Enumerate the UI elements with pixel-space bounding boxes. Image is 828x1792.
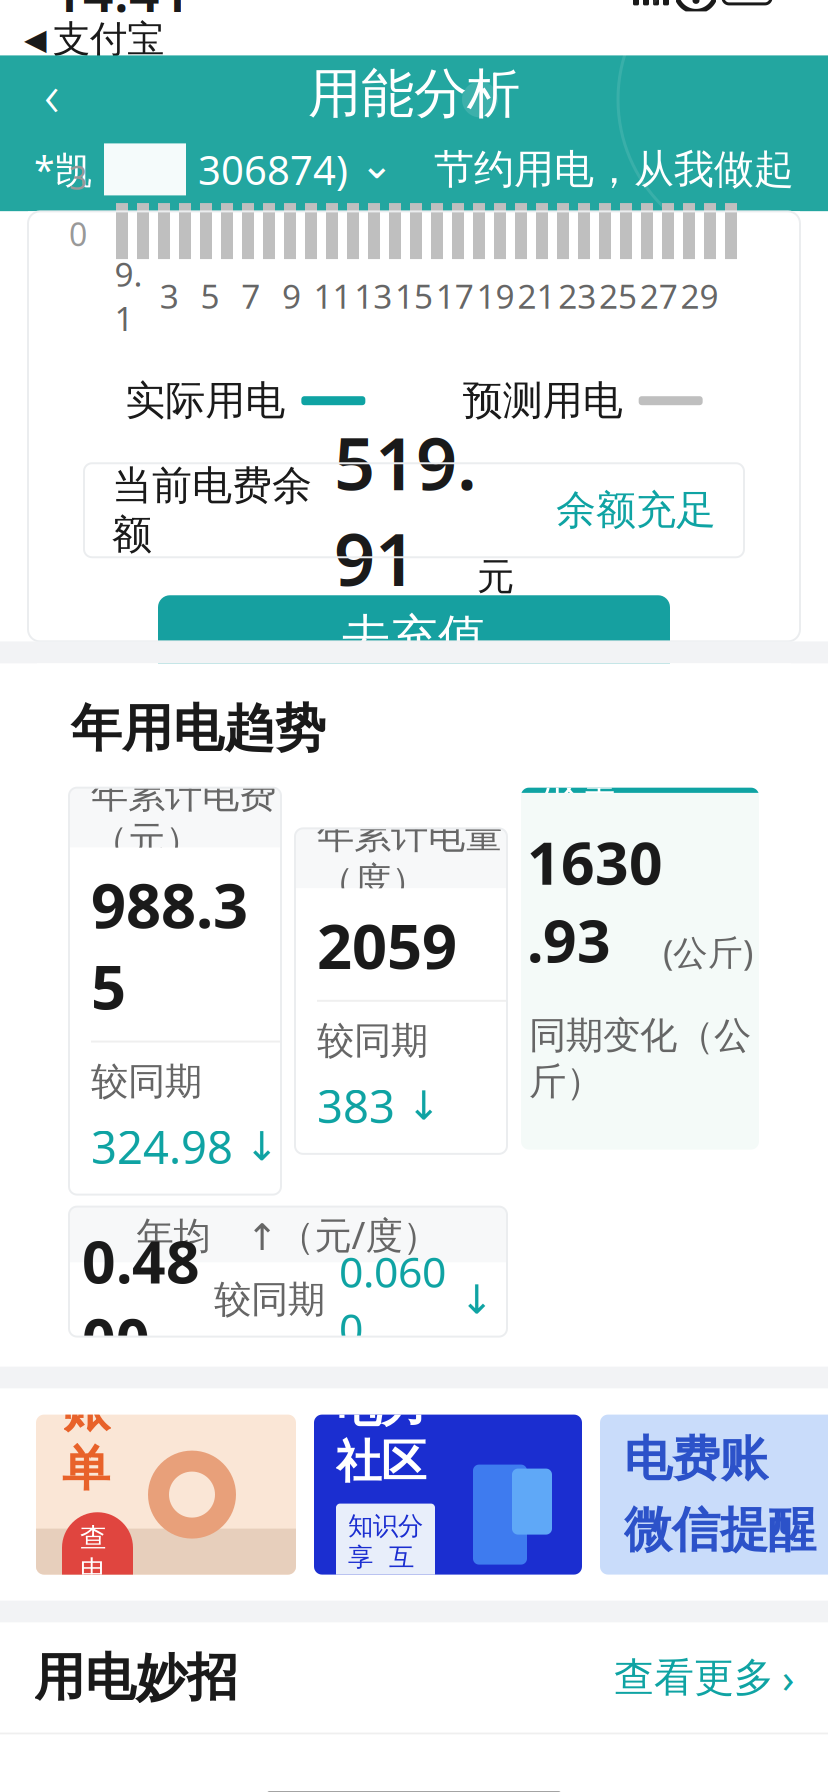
staticText: 较同期: [214, 1277, 325, 1323]
staticText: 13: [354, 274, 392, 318]
staticText: 0.4800: [82, 1222, 200, 1377]
staticText: ⌄: [360, 142, 394, 187]
staticText: 519.91: [334, 415, 477, 606]
button[interactable]: ◀: [20, 14, 168, 64]
staticText: 较同期: [91, 1058, 202, 1104]
staticText: 0: [69, 213, 87, 255]
button[interactable]: 选择账户: [34, 142, 394, 197]
staticText: 较同期: [317, 1018, 428, 1064]
staticText: ↓: [460, 1277, 494, 1322]
staticText: 电费账: [624, 1430, 768, 1489]
staticText: 年均 ↑（元/度）: [136, 1210, 439, 1259]
staticText: 元: [477, 554, 514, 600]
staticText: 14:41: [52, 0, 191, 27]
staticText: 知识分享 互动探讨: [348, 1511, 423, 1604]
staticText: 年累计碳排放量: [540, 708, 740, 806]
staticText: 7: [241, 274, 260, 318]
staticText: 21: [517, 274, 555, 318]
staticText: 余额充足: [556, 486, 716, 535]
button[interactable]: 电费账单: [36, 1415, 296, 1575]
staticText: ›: [782, 1651, 794, 1704]
staticText: 5: [200, 274, 219, 318]
staticText: 27: [640, 274, 678, 318]
staticText: 988.35: [91, 864, 248, 1026]
staticText: 节约用电，从我做起: [434, 145, 794, 194]
staticText: 年用电趋势: [71, 697, 326, 760]
staticText: 324.98: [91, 1116, 233, 1177]
staticText: 年累计电费（元）: [91, 772, 276, 863]
staticText: 9: [282, 274, 301, 318]
staticText: 用能分析: [308, 61, 520, 126]
staticText: 1630.93: [527, 823, 663, 979]
button[interactable]: 返回: [18, 60, 86, 128]
staticText: 306874): [198, 143, 348, 196]
staticText: 支付宝: [53, 16, 164, 62]
button[interactable]: 电费账单微信提醒: [600, 1415, 828, 1575]
staticText: 年累计电量（度）: [317, 812, 502, 904]
staticText: 0.0600: [339, 1243, 446, 1356]
button[interactable]: 查看更多: [614, 1651, 794, 1704]
staticText: ‹: [44, 55, 60, 133]
staticText: ↓: [245, 1124, 279, 1169]
staticText: 383: [317, 1076, 395, 1136]
staticText: 同期变化（公斤）: [529, 1013, 751, 1104]
staticText: 微信提醒: [624, 1501, 816, 1560]
staticText: ◀: [24, 23, 47, 56]
staticText: (公斤): [663, 929, 753, 975]
staticText: 预测用电: [463, 376, 623, 425]
staticText: 电力社区: [336, 1378, 426, 1490]
staticText: 2059: [317, 904, 457, 986]
staticText: 303.38: [521, 1138, 707, 1216]
button[interactable]: 电力社区: [314, 1415, 582, 1575]
staticText: 29: [681, 274, 719, 318]
staticText: 电费账单: [62, 1262, 110, 1498]
button[interactable]: 去充值: [158, 595, 670, 679]
staticText: 实际用电: [125, 376, 285, 425]
staticText: 17: [436, 274, 474, 318]
staticText: 当前电费余额: [112, 461, 312, 559]
staticText: 用电妙招: [34, 1646, 238, 1709]
staticText: 查看更多: [614, 1653, 774, 1702]
staticText: 查电量 查电费: [80, 1521, 115, 1718]
staticText: 3: [69, 156, 87, 199]
staticText: 23: [558, 274, 596, 318]
staticText: *凯: [34, 145, 92, 194]
staticText: ↓: [407, 1083, 441, 1128]
staticText: 9.1: [114, 252, 142, 340]
staticText: 19: [477, 274, 515, 318]
staticText: 25: [599, 274, 637, 318]
staticText: 3: [160, 274, 179, 318]
staticText: 11: [313, 274, 351, 318]
staticText: 去充值: [342, 608, 486, 667]
staticText: 15: [395, 274, 433, 318]
